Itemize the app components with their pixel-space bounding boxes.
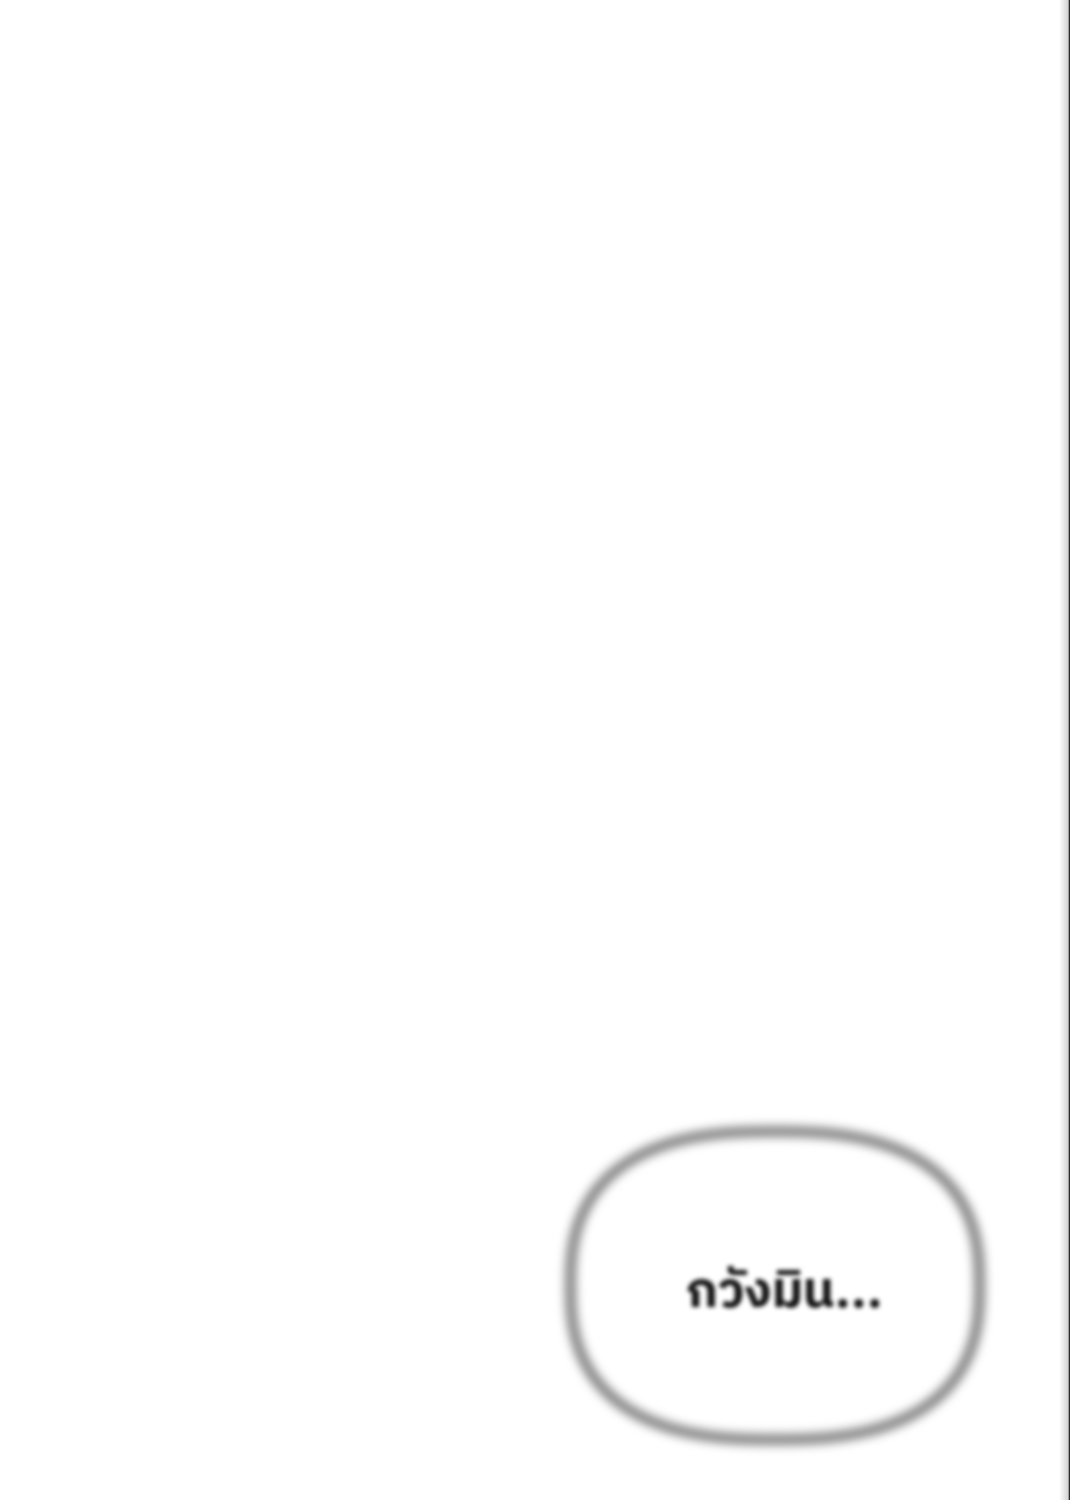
button[interactable]: Comic page panel <box>0 0 1070 1500</box>
